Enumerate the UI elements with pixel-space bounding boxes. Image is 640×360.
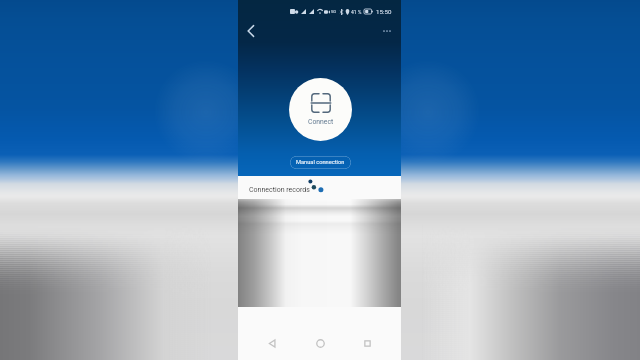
button[interactable]: Home <box>307 330 333 356</box>
staticText: 15:50 <box>376 8 392 15</box>
button[interactable]: Recents <box>354 330 380 356</box>
staticText: Manual connection <box>296 159 345 166</box>
staticText: 5G <box>331 9 337 14</box>
staticText: 41 % <box>351 9 362 15</box>
button[interactable]: Back <box>259 330 285 356</box>
staticText: Connection records <box>249 186 310 194</box>
button[interactable]: More options <box>376 20 398 42</box>
button[interactable]: Back <box>240 20 262 42</box>
staticText: Connect <box>308 118 334 126</box>
button[interactable]: Connect <box>289 78 352 141</box>
button[interactable]: Manual connection <box>290 156 351 169</box>
